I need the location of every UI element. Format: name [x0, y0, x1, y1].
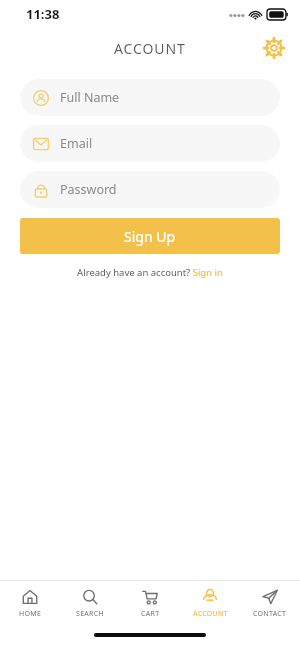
button[interactable]: HOME: [0, 581, 60, 627]
button[interactable]: Settings: [258, 32, 290, 64]
staticText: Password: [60, 181, 117, 198]
staticText: CART: [141, 609, 160, 619]
button[interactable]: Email: [20, 125, 280, 162]
staticText: 11:38: [26, 5, 60, 23]
staticText: ACCOUNT: [193, 609, 228, 619]
button[interactable]: Sign Up: [20, 218, 280, 254]
staticText: Sign Up: [124, 227, 176, 246]
button[interactable]: Full Name: [20, 79, 280, 116]
button[interactable]: Already have an account? Sign in: [0, 266, 300, 279]
staticText: ACCOUNT: [114, 39, 186, 58]
button[interactable]: CART: [120, 581, 180, 627]
button[interactable]: SEARCH: [60, 581, 120, 627]
staticText: Already have an account? Sign in: [77, 266, 223, 279]
staticText: Email: [60, 135, 93, 152]
button[interactable]: ACCOUNT: [180, 581, 240, 627]
button[interactable]: Password: [20, 171, 280, 208]
staticText: HOME: [19, 609, 42, 619]
button[interactable]: CONTACT: [240, 581, 300, 627]
staticText: CONTACT: [253, 609, 287, 619]
staticText: SEARCH: [76, 609, 104, 619]
staticText: Full Name: [60, 89, 120, 106]
